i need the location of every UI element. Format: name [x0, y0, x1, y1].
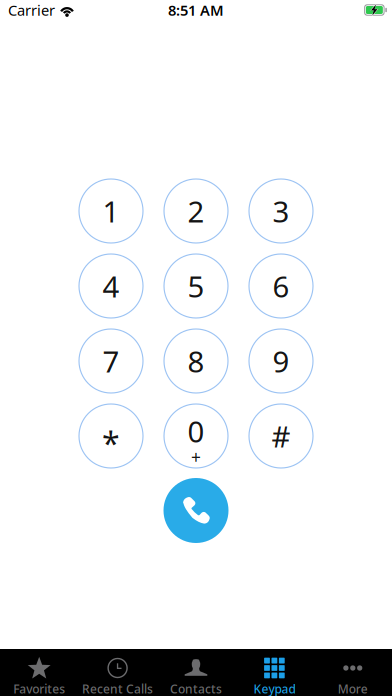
button[interactable]: 6 — [249, 254, 313, 318]
button[interactable]: Recent Calls — [78, 649, 157, 696]
button[interactable]: # — [249, 404, 313, 468]
staticText: * — [102, 422, 120, 464]
staticText: Favorites — [13, 681, 65, 696]
staticText: 0 — [187, 411, 204, 450]
button[interactable]: 4 — [79, 254, 143, 318]
staticText: 4 — [102, 266, 119, 305]
staticText: 3 — [272, 191, 289, 230]
button[interactable]: 0 — [164, 404, 228, 468]
button[interactable]: Favorites — [0, 649, 78, 696]
staticText: Carrier — [8, 0, 55, 20]
staticText: # — [271, 416, 290, 455]
staticText: 9 — [272, 341, 289, 380]
button[interactable]: Keypad — [235, 649, 314, 696]
button[interactable]: 9 — [249, 329, 313, 393]
button[interactable]: Contacts — [157, 649, 235, 696]
staticText: 8:51 AM — [168, 0, 224, 20]
staticText: 6 — [272, 266, 289, 305]
staticText: Contacts — [170, 681, 222, 696]
button[interactable]: 8 — [164, 329, 228, 393]
button[interactable]: 7 — [79, 329, 143, 393]
button[interactable]: 1 — [79, 179, 143, 243]
button[interactable]: Call — [163, 478, 228, 543]
staticText: 5 — [187, 266, 204, 305]
staticText: 2 — [187, 191, 204, 230]
button[interactable]: More — [314, 649, 392, 696]
staticText: + — [191, 445, 201, 468]
button[interactable]: 3 — [249, 179, 313, 243]
staticText: 1 — [102, 191, 119, 230]
button[interactable]: * — [79, 404, 143, 468]
button[interactable]: 5 — [164, 254, 228, 318]
staticText: Keypad — [253, 681, 295, 696]
staticText: Recent Calls — [82, 681, 153, 696]
staticText: 8 — [187, 341, 204, 380]
button[interactable]: 2 — [164, 179, 228, 243]
staticText: More — [338, 681, 368, 696]
staticText: 7 — [102, 341, 119, 380]
